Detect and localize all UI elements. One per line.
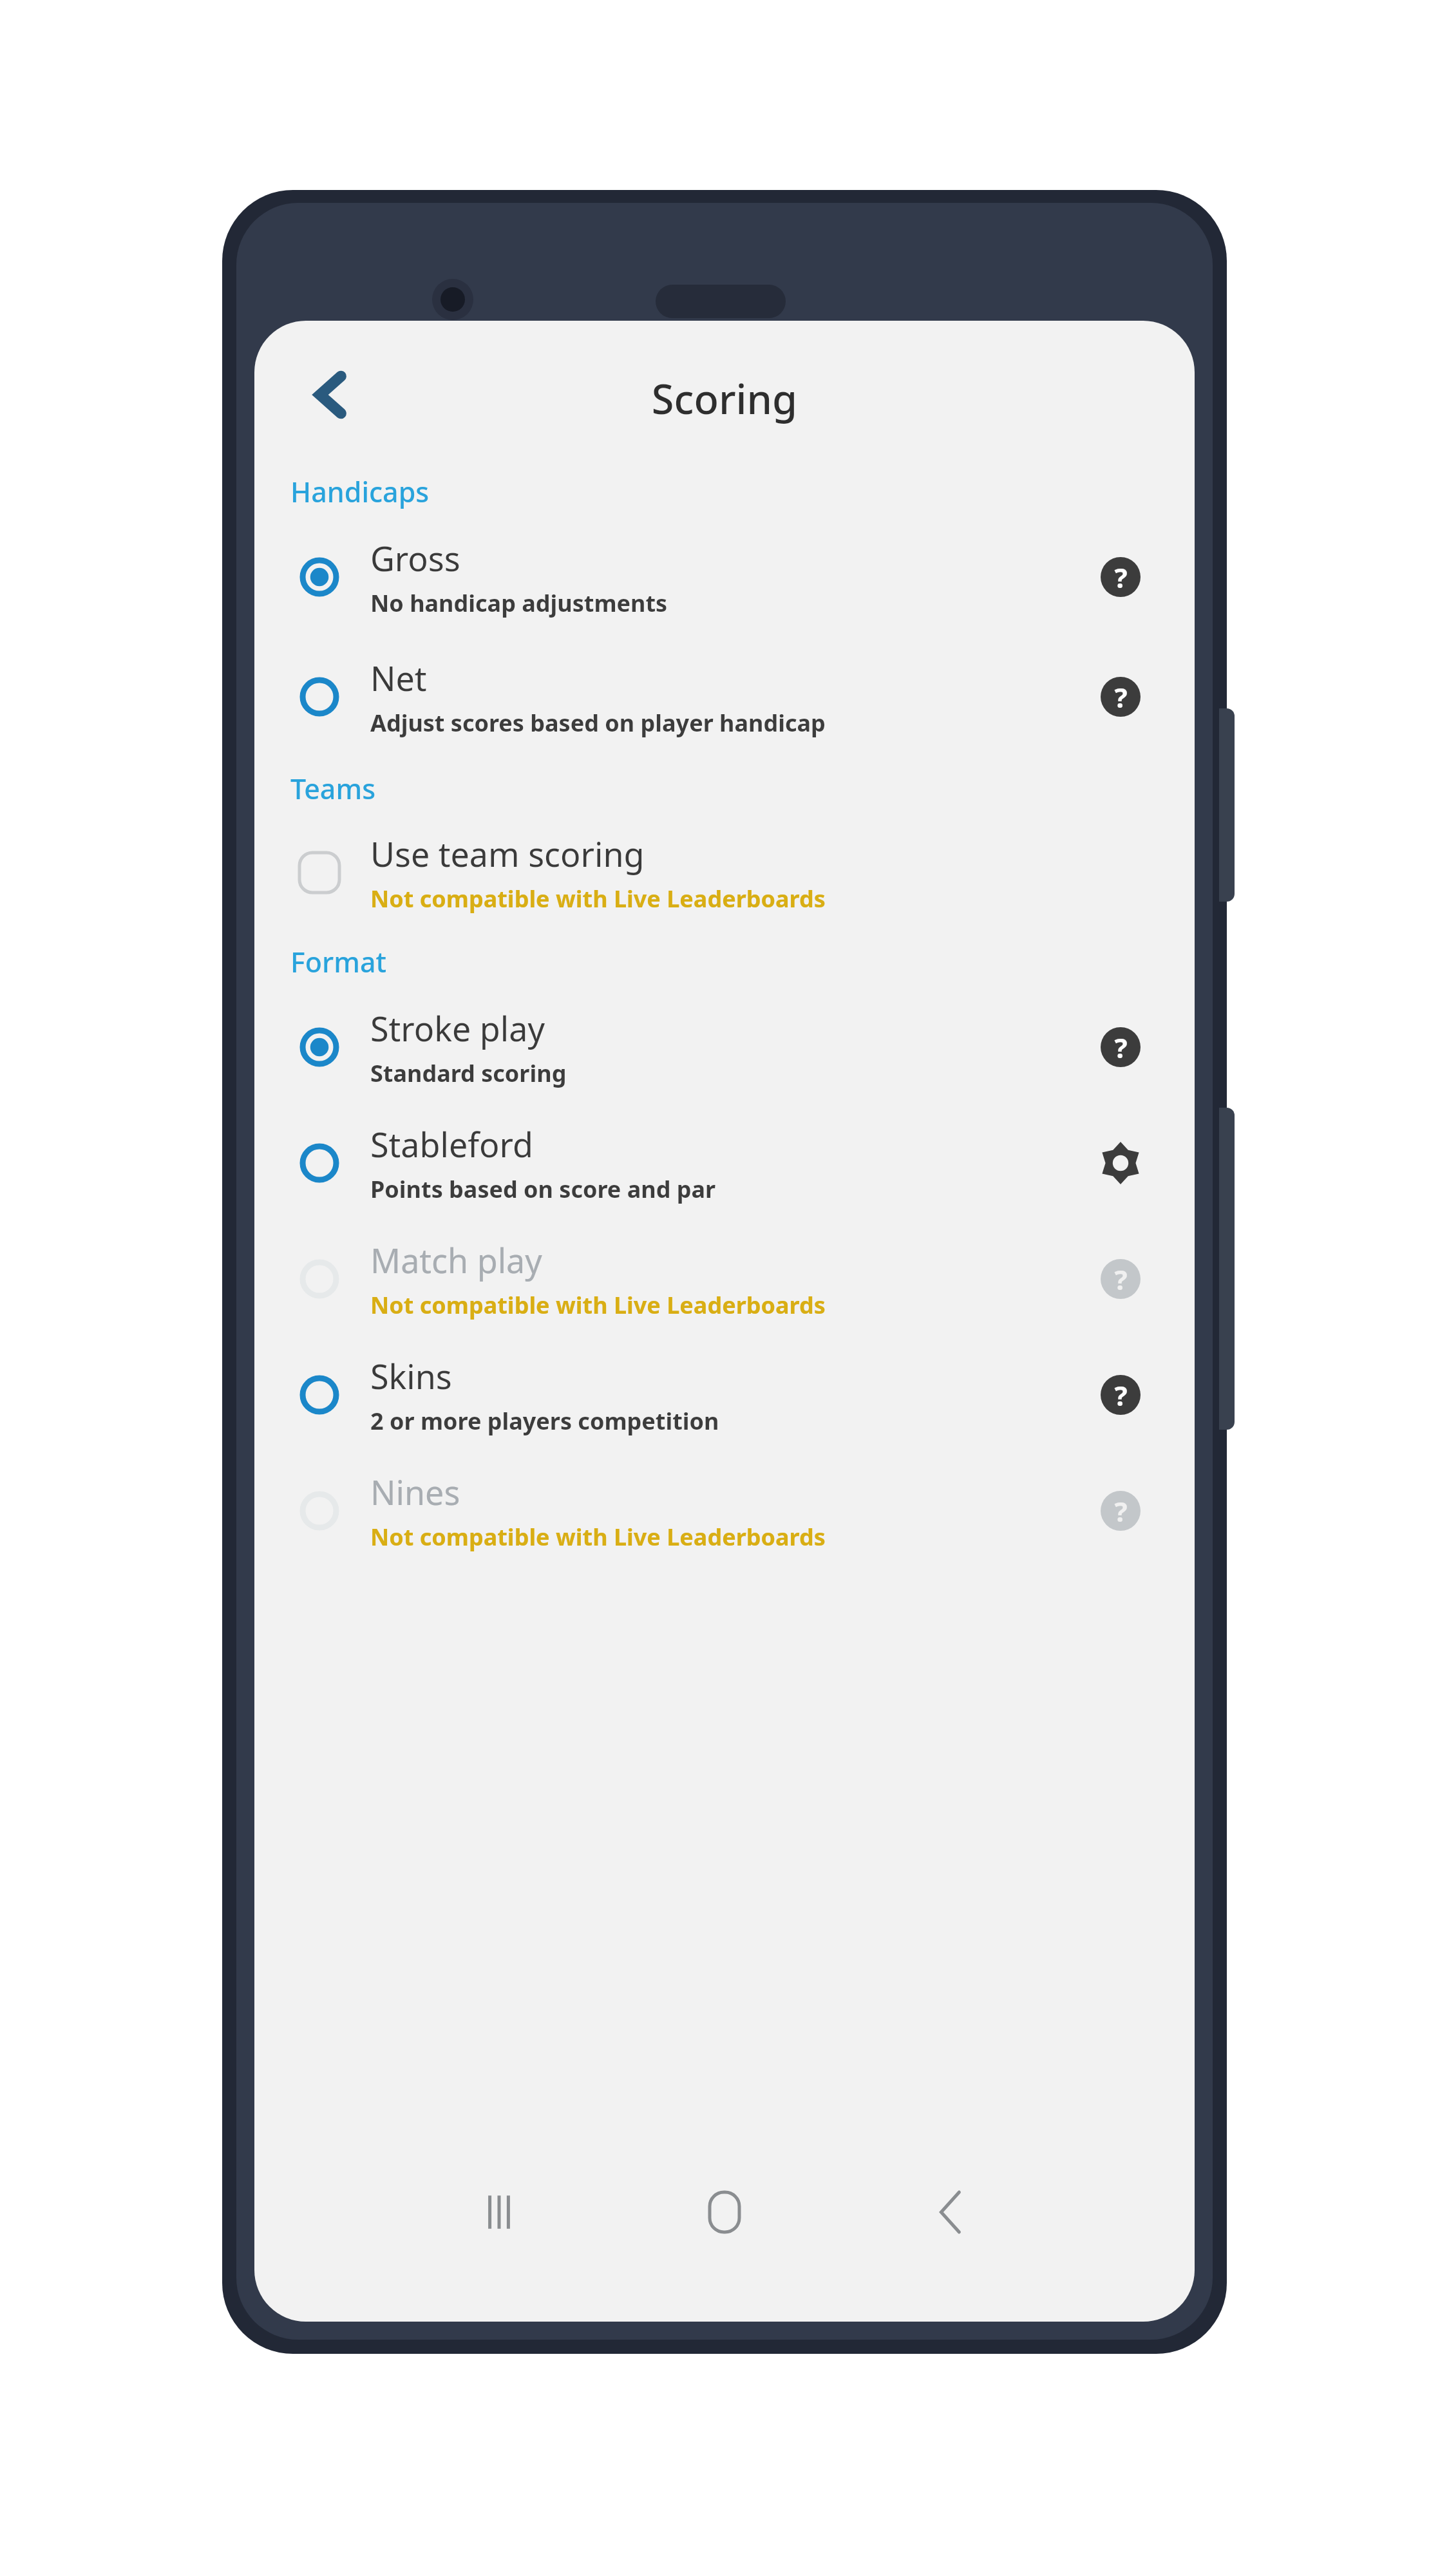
- button[interactable]: Help: [1072, 649, 1169, 745]
- button[interactable]: Gross: [254, 529, 1195, 625]
- staticText: Use team scoring: [370, 831, 645, 876]
- button[interactable]: Settings: [1072, 1115, 1169, 1211]
- staticText: Gross: [370, 535, 460, 581]
- button[interactable]: Net: [254, 649, 1195, 745]
- staticText: ?: [1114, 679, 1128, 715]
- staticText: Adjust scores based on player handicap: [370, 707, 826, 739]
- staticText: Format: [290, 943, 386, 981]
- staticText: ?: [1114, 559, 1128, 596]
- staticText: ?: [1114, 1029, 1128, 1066]
- button[interactable]: Back: [287, 350, 377, 440]
- button[interactable]: Help: [1072, 1231, 1169, 1327]
- button[interactable]: Help: [1072, 1463, 1169, 1559]
- staticText: Stroke play: [370, 1005, 545, 1051]
- staticText: Not compatible with Live Leaderboards: [370, 1289, 826, 1321]
- button[interactable]: Stableford: [254, 1115, 1195, 1211]
- staticText: Net: [370, 655, 427, 701]
- staticText: Not compatible with Live Leaderboards: [370, 883, 826, 914]
- staticText: Match play: [370, 1237, 542, 1283]
- button[interactable]: Help: [1072, 1347, 1169, 1443]
- staticText: Points based on score and par: [370, 1173, 716, 1205]
- button[interactable]: Home: [654, 2170, 795, 2254]
- staticText: Not compatible with Live Leaderboards: [370, 1521, 826, 1553]
- staticText: Handicaps: [290, 473, 430, 511]
- staticText: ?: [1114, 1493, 1128, 1529]
- button[interactable]: Help: [1072, 529, 1169, 625]
- staticText: Stableford: [370, 1121, 533, 1167]
- button[interactable]: Skins: [254, 1347, 1195, 1443]
- staticText: Nines: [370, 1469, 460, 1515]
- button[interactable]: Help: [1072, 999, 1169, 1095]
- staticText: Scoring: [254, 371, 1195, 426]
- staticText: No handicap adjustments: [370, 587, 668, 619]
- button[interactable]: Back: [879, 2170, 1021, 2254]
- button[interactable]: Nines: [254, 1463, 1195, 1559]
- staticText: Skins: [370, 1353, 452, 1399]
- staticText: ?: [1114, 1261, 1128, 1298]
- staticText: 2 or more players competition: [370, 1405, 719, 1437]
- staticText: Standard scoring: [370, 1057, 567, 1089]
- staticText: Teams: [290, 770, 376, 808]
- button[interactable]: Stroke play: [254, 999, 1195, 1095]
- button[interactable]: Recent apps: [428, 2170, 570, 2254]
- button[interactable]: Use team scoring: [254, 824, 1195, 921]
- staticText: ?: [1114, 1377, 1128, 1414]
- button[interactable]: Match play: [254, 1231, 1195, 1327]
